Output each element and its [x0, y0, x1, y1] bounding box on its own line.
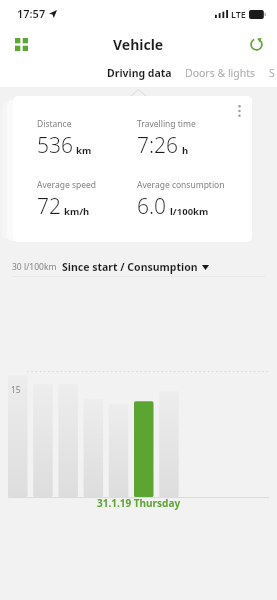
staticText: km: [76, 144, 92, 157]
staticText: 72: [37, 192, 61, 221]
staticText: km/h: [64, 205, 90, 218]
staticText: Travelling time: [137, 118, 196, 130]
staticText: 15: [11, 384, 21, 396]
button[interactable]: Since start / Consumption: [62, 260, 209, 274]
staticText: Since start / Consumption: [62, 260, 198, 274]
button[interactable]: Menu: [7, 30, 35, 58]
staticText: 30 l/100km: [12, 261, 57, 273]
staticText: 6.0: [137, 192, 167, 221]
staticText: 17:57: [17, 6, 46, 21]
staticText: 7:26: [137, 131, 179, 160]
button[interactable]: More options: [229, 101, 249, 121]
staticText: Average speed: [37, 179, 96, 191]
staticText: Average consumption: [137, 179, 225, 191]
staticText: l/100km: [170, 205, 209, 218]
button[interactable]: Doors & lights: [182, 63, 259, 83]
staticText: 31.1.19 Thursday: [97, 496, 181, 510]
staticText: 536: [37, 131, 73, 160]
staticText: Distance: [37, 118, 72, 130]
button[interactable]: S: [266, 63, 277, 83]
button[interactable]: More options: [13, 96, 252, 242]
staticText: Driving data: [107, 66, 172, 80]
staticText: Doors & lights: [185, 66, 256, 80]
button[interactable]: Refresh: [242, 30, 270, 58]
staticText: S: [269, 66, 275, 80]
staticText: LTE: [231, 8, 246, 20]
staticText: h: [182, 144, 189, 157]
staticText: Vehicle: [113, 35, 164, 54]
button[interactable]: Driving data: [104, 63, 175, 83]
